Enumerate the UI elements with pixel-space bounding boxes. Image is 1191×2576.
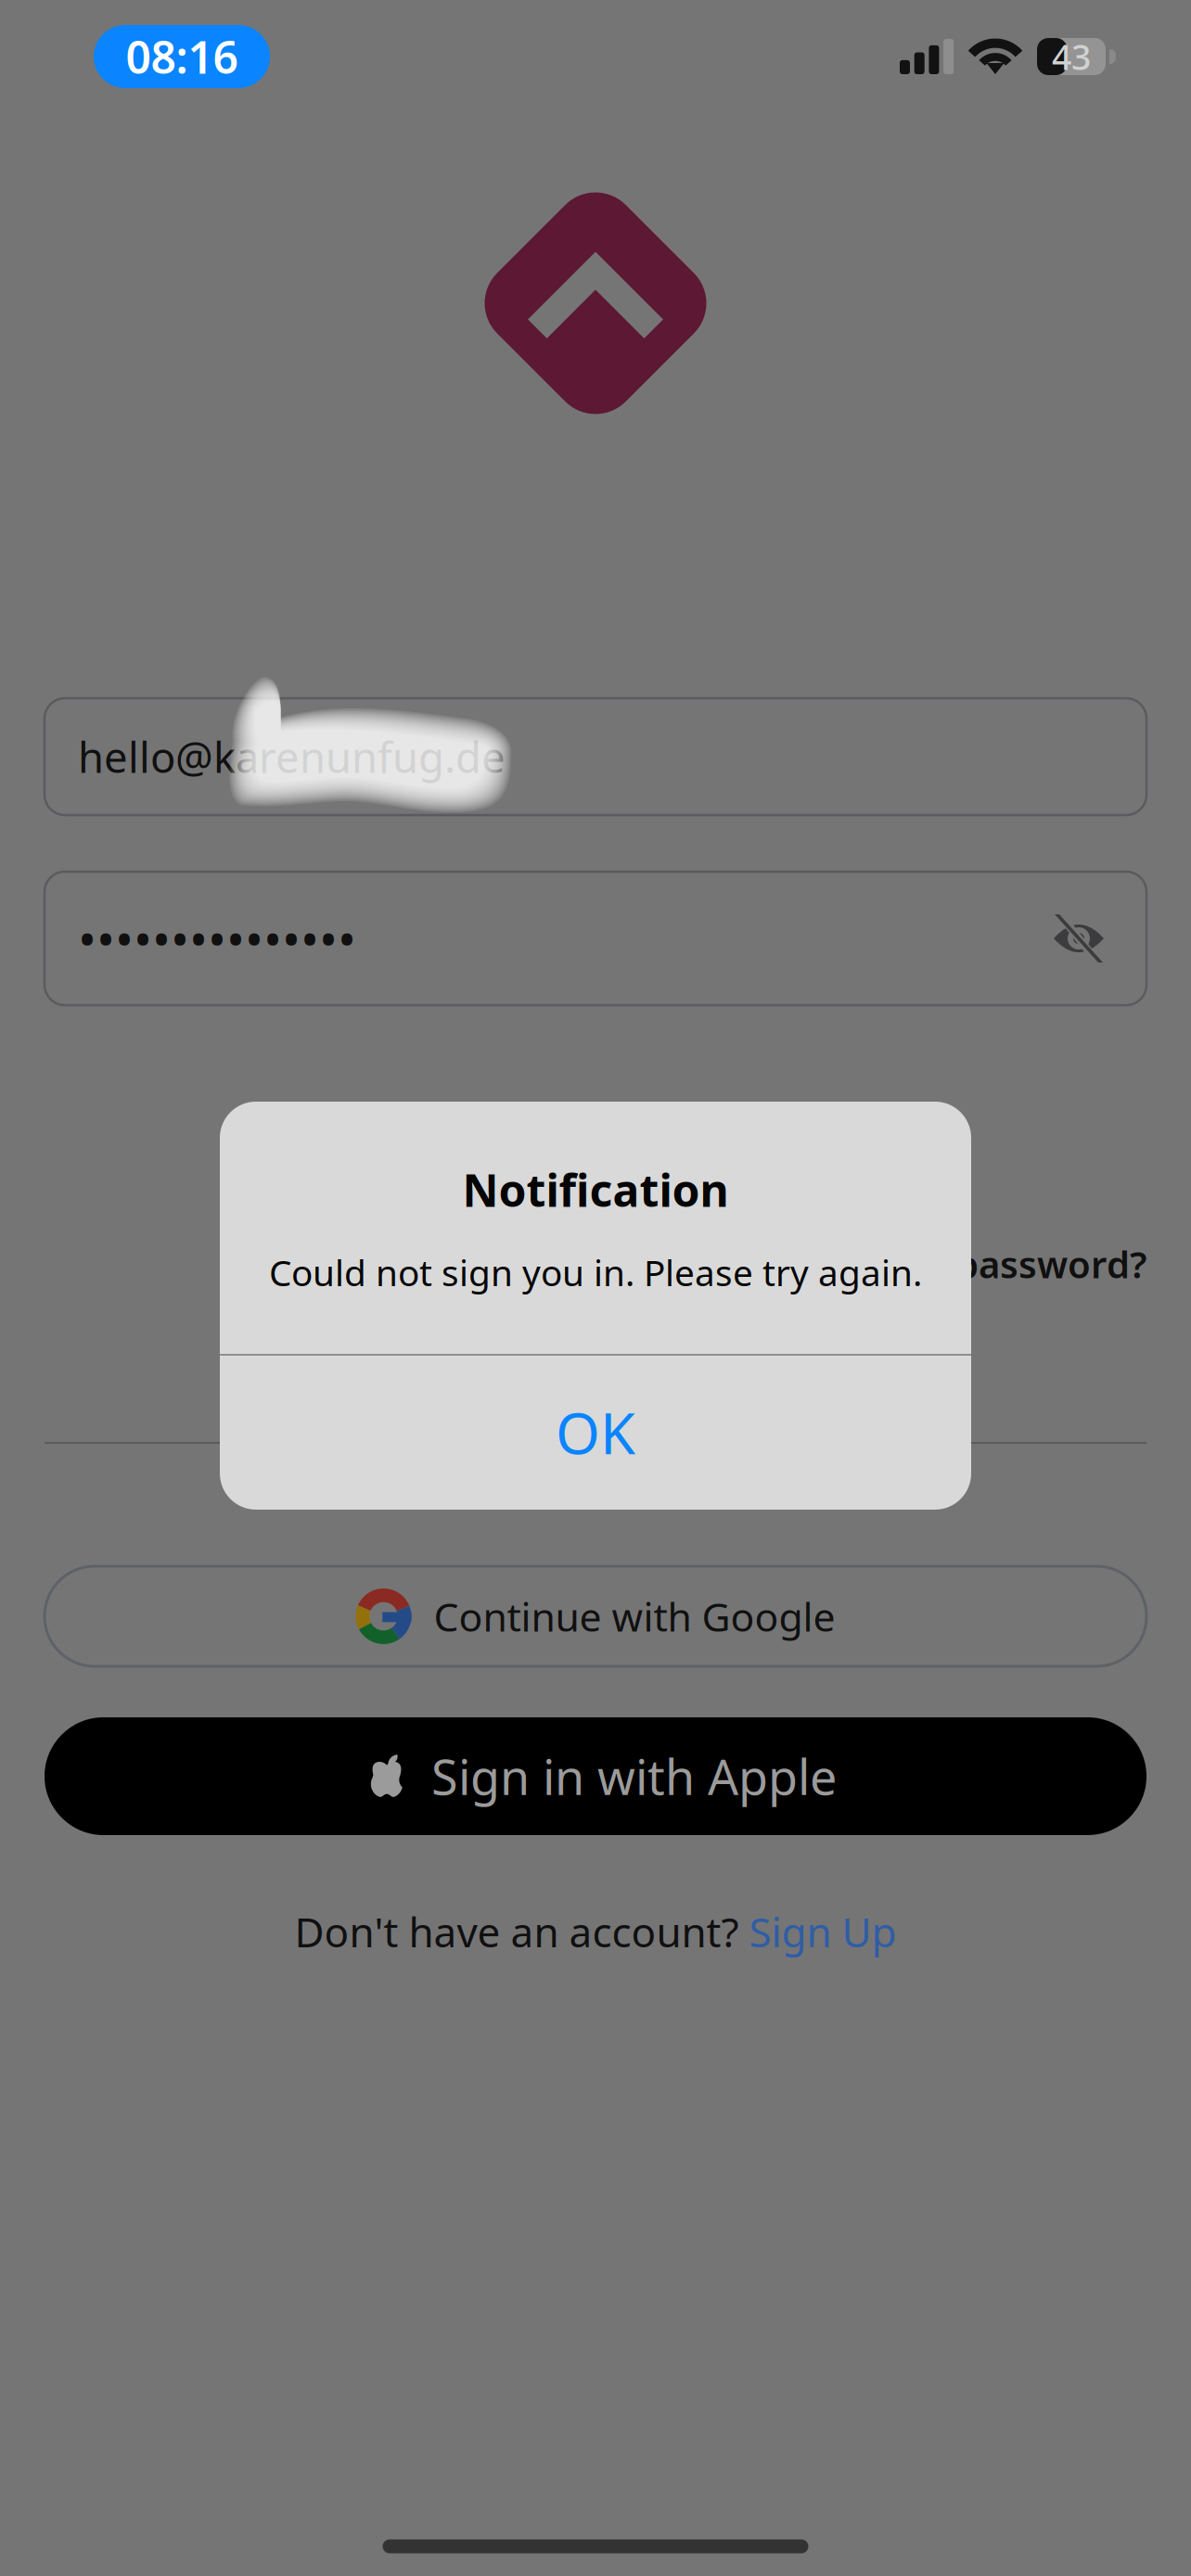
button[interactable]: OK xyxy=(220,1355,971,1510)
staticText: ••••••••••••••• xyxy=(78,906,356,971)
button[interactable]: ••••••••••••••• xyxy=(45,872,1146,1005)
staticText: Continue with Google xyxy=(434,1590,835,1643)
staticText: Sign in with Apple xyxy=(431,1744,837,1808)
button[interactable]: hello@karenunfug.de xyxy=(45,698,1146,815)
button[interactable]: Sign in with Apple xyxy=(45,1717,1146,1835)
button[interactable]: Forgot password? xyxy=(45,1234,1146,1294)
staticText: OK xyxy=(556,1394,635,1470)
staticText: Could not sign you in. Please try again. xyxy=(269,1248,922,1296)
staticText: Forgot password? xyxy=(826,1239,1146,1288)
staticText: hello@karenunfug.de xyxy=(78,729,506,785)
staticText: Don't have an account? xyxy=(295,1904,749,1959)
button[interactable]: Don't have an account? xyxy=(295,1904,896,1959)
button[interactable]: Continue with Google xyxy=(45,1566,1146,1666)
staticText: Notification xyxy=(462,1160,729,1219)
staticText: 08:16 xyxy=(126,27,238,86)
staticText: Sign Up xyxy=(749,1904,896,1959)
staticText: 43 xyxy=(1052,34,1091,80)
button[interactable]: Show password xyxy=(1027,886,1131,990)
